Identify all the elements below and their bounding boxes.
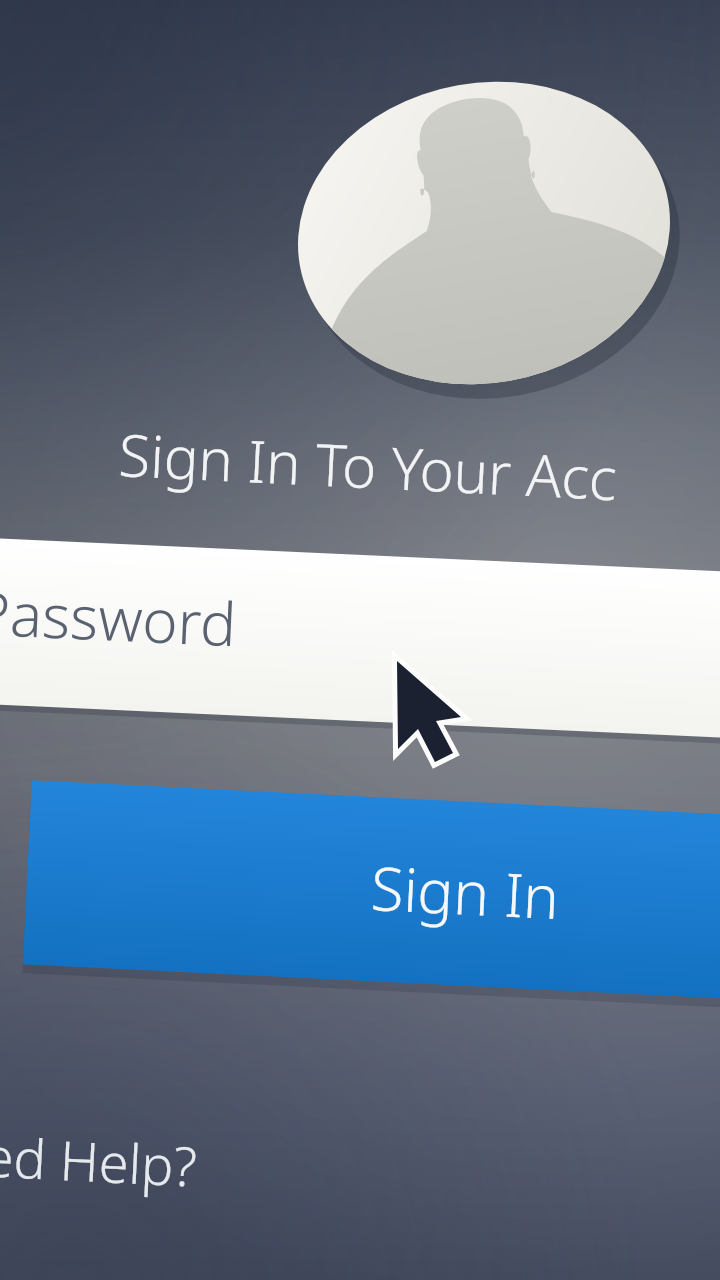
- button[interactable]: Sign In: [27, 797, 720, 987]
- button[interactable]: Password field: [0, 545, 720, 725]
- button[interactable]: Profile picture: [298, 84, 670, 384]
- button[interactable]: Need Help?: [0, 1110, 300, 1200]
